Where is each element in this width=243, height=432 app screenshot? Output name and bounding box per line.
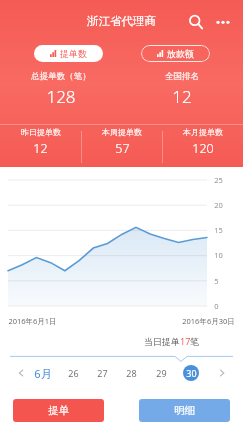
staticText: 20 [214,200,223,210]
button[interactable]: 27 [94,365,110,381]
staticText: 当日提单17笔 [144,335,200,347]
staticText: 本月提单数 [183,127,223,137]
button[interactable]: 29 [153,365,169,381]
button[interactable]: Previous [12,364,30,382]
staticText: 25 [214,175,223,185]
button[interactable]: 明细 [139,399,230,422]
staticText: 放款额 [167,48,194,59]
staticText: 57 [115,140,130,157]
staticText: 明细 [174,404,195,417]
staticText: 昨日提单数 [21,127,61,137]
button[interactable]: Search [183,9,209,35]
staticText: 28 [126,367,137,379]
staticText: 128 [46,85,76,108]
staticText: 12 [172,85,192,108]
button[interactable]: 提单数 [34,45,103,62]
staticText: 29 [156,367,167,379]
staticText: 提单 [48,404,69,417]
button[interactable]: 全国排名 [121,71,243,108]
staticText: 0 [214,301,219,311]
staticText: 2016年6月30日 [182,316,235,326]
button[interactable]: 昨日提单数 [0,127,81,157]
staticText: 27 [97,367,108,379]
button[interactable]: More options [211,10,235,34]
staticText: 30 [186,367,197,379]
staticText: 提单数 [60,48,87,59]
staticText: 10 [214,250,223,260]
button[interactable]: 本周提单数 [82,127,162,157]
staticText: 总提单数（笔） [31,71,91,82]
button[interactable]: Next [213,364,231,382]
staticText: 6月 [34,366,52,381]
staticText: 本周提单数 [102,127,142,137]
button[interactable]: 本月提单数 [163,127,243,157]
staticText: 5 [214,276,219,286]
staticText: 浙江省代理商 [87,14,156,28]
button[interactable]: 28 [123,365,139,381]
button[interactable]: 总提单数（笔） [0,71,121,108]
staticText: 26 [68,367,79,379]
button[interactable]: 30 [183,365,199,381]
staticText: 全国排名 [165,71,199,82]
button[interactable]: 6月 [34,366,52,381]
staticText: 120 [192,140,214,157]
staticText: 2016年6月1日 [8,316,57,326]
button[interactable]: 提单 [13,399,104,422]
staticText: 12 [33,140,48,157]
button[interactable]: 26 [65,365,81,381]
button[interactable]: 放款额 [141,45,210,62]
staticText: 15 [214,225,223,235]
